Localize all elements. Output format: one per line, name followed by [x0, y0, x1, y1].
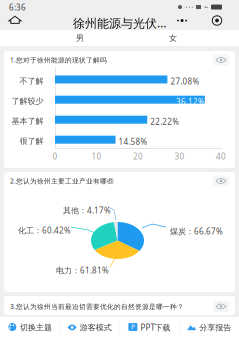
button[interactable]: 女: [126, 30, 219, 46]
staticText: 很了解: [19, 136, 43, 146]
button[interactable]: Close: [209, 13, 225, 27]
staticText: 1.您对于徐州能源的现状了解吗: [10, 55, 107, 64]
staticText: ⌁: [204, 3, 208, 11]
staticText: 煤炭：66.67%: [170, 226, 223, 237]
button[interactable]: Change chart type: [212, 53, 230, 66]
staticText: 6:36: [9, 2, 26, 13]
staticText: 2.您认为徐州主要工业产业有哪些: [10, 176, 114, 185]
staticText: 男: [76, 33, 84, 43]
staticText: ⋯: [185, 2, 193, 12]
staticText: 3.您认为徐州当前最迫切需要优化的自然资源是哪一种？: [10, 302, 184, 311]
staticText: 游客模式: [80, 323, 112, 332]
staticText: 14.58%: [118, 136, 147, 147]
staticText: 切换主题: [20, 323, 52, 332]
staticText: 不了解: [19, 76, 43, 86]
button[interactable]: Home: [6, 12, 24, 28]
button[interactable]: 分享报告: [179, 317, 239, 338]
staticText: 徐州能源与光伏…: [73, 15, 166, 31]
staticText: 基本了解: [11, 116, 43, 126]
staticText: 10: [91, 151, 101, 162]
staticText: 了解较少: [11, 96, 43, 106]
staticText: P: [131, 323, 135, 331]
button[interactable]: Change chart type: [212, 174, 230, 187]
staticText: PPT下载: [140, 322, 170, 333]
staticText: 36.12%: [176, 96, 205, 107]
staticText: 女: [169, 33, 177, 43]
staticText: 化工：60.42%: [18, 225, 71, 236]
staticText: 20: [133, 151, 143, 162]
button[interactable]: More options: [176, 13, 192, 27]
button[interactable]: 游客模式: [60, 317, 120, 338]
button[interactable]: 男: [33, 30, 126, 46]
button[interactable]: P: [119, 317, 179, 338]
staticText: 0: [52, 151, 57, 162]
staticText: 22.22%: [150, 116, 179, 127]
button[interactable]: Change chart type: [212, 300, 230, 313]
staticText: 电力：61.81%: [56, 265, 109, 276]
staticText: 分享报告: [199, 323, 231, 332]
staticText: 其他：4.17%: [63, 205, 111, 216]
button[interactable]: 切换主题: [0, 317, 60, 338]
staticText: 40: [216, 151, 226, 162]
staticText: 27.08%: [170, 76, 199, 87]
staticText: 30: [174, 151, 184, 162]
